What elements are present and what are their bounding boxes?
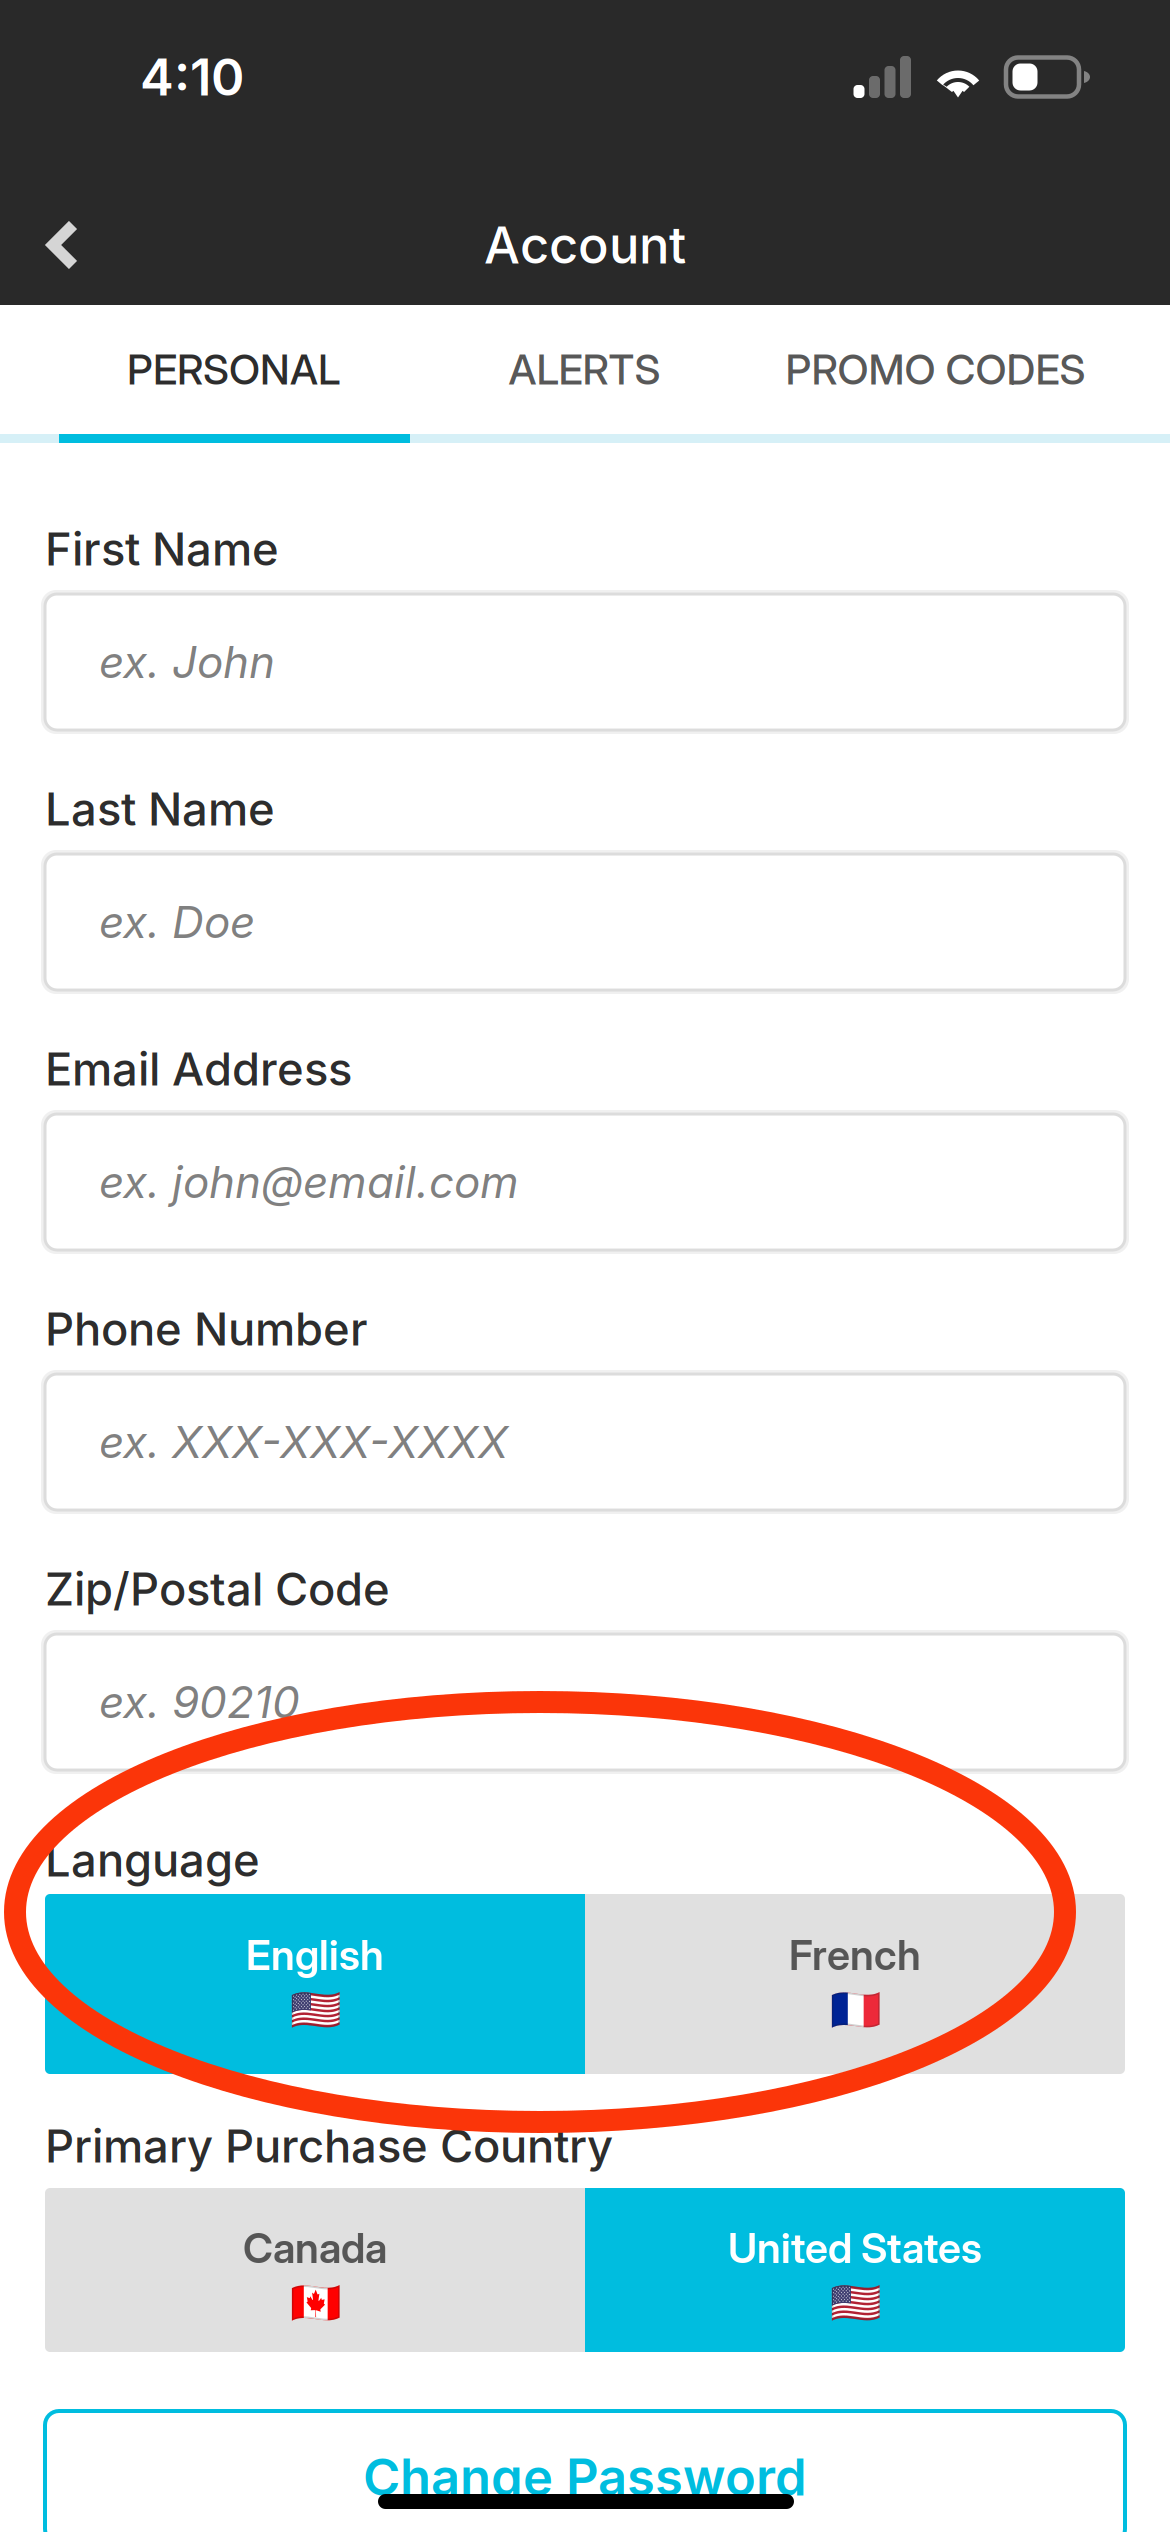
button[interactable]: ex. XXX-XXX-XXXX (45, 1374, 1125, 1510)
button[interactable]: English (45, 1894, 585, 2074)
staticText: Language (45, 1833, 260, 1887)
button[interactable]: United States (585, 2188, 1125, 2352)
button[interactable]: ex. John (45, 594, 1125, 730)
button[interactable]: Change Password (45, 2411, 1125, 2532)
staticText: Change Password (363, 2446, 807, 2508)
staticText: Last Name (45, 782, 275, 836)
staticText: Email Address (45, 1042, 352, 1096)
staticText: Zip/Postal Code (45, 1562, 390, 1616)
staticText: 🇺🇸 (289, 1986, 340, 2034)
staticText: ALERTS (508, 344, 660, 394)
staticText: Canada (243, 2223, 387, 2273)
button[interactable]: ALERTS (409, 305, 760, 434)
staticText: First Name (45, 522, 279, 576)
staticText: PERSONAL (127, 344, 340, 394)
staticText: ex. John (99, 635, 275, 689)
staticText: United States (728, 2223, 982, 2273)
staticText: ex. XXX-XXX-XXXX (99, 1415, 508, 1469)
staticText: 🇺🇸 (829, 2279, 880, 2327)
button[interactable]: ex. 90210 (45, 1634, 1125, 1770)
staticText: English (246, 1930, 384, 1980)
staticText: French (789, 1930, 921, 1980)
button[interactable]: ex. Doe (45, 854, 1125, 990)
staticText: Account (484, 214, 686, 276)
staticText: 4:10 (140, 46, 244, 108)
staticText: 🇫🇷 (829, 1986, 880, 2034)
staticText: ex. Doe (99, 895, 255, 949)
staticText: Phone Number (45, 1302, 368, 1356)
button[interactable]: ex. john@email.com (45, 1114, 1125, 1250)
button[interactable]: Canada (45, 2188, 585, 2352)
button[interactable]: PERSONAL (58, 305, 409, 434)
staticText: ex. 90210 (99, 1675, 300, 1729)
button[interactable]: French (585, 1894, 1125, 2074)
staticText: 🇨🇦 (289, 2279, 340, 2327)
button[interactable]: Back (0, 190, 129, 300)
staticText: Primary Purchase Country (45, 2119, 613, 2173)
button[interactable]: PROMO CODES (760, 305, 1111, 434)
staticText: ex. john@email.com (99, 1155, 519, 1209)
staticText: PROMO CODES (785, 344, 1085, 394)
